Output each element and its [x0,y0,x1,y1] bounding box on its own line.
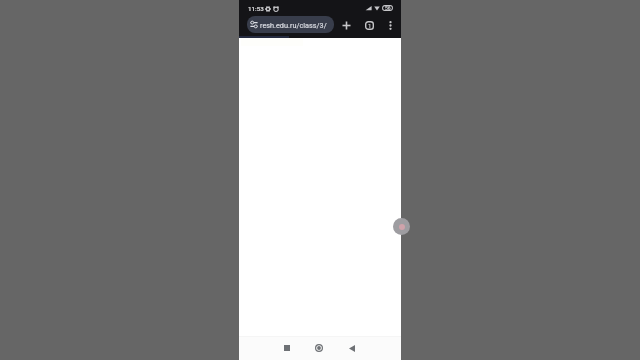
button[interactable]: Home [311,340,327,356]
staticText: 56 [385,5,391,11]
staticText: 11:53 [248,5,264,12]
button[interactable]: Tabs, 1 open [361,17,377,33]
button[interactable]: More options [382,17,398,33]
staticText: resh.edu.ru/class/3/ [260,21,327,30]
button[interactable]: New tab [338,17,354,33]
staticText: 1 [368,22,372,29]
button[interactable]: resh.edu.ru/class/3/ [247,16,334,33]
button[interactable]: Back [344,340,360,356]
button[interactable]: Recents [279,340,295,356]
button[interactable]: Floating assistant [393,218,410,235]
